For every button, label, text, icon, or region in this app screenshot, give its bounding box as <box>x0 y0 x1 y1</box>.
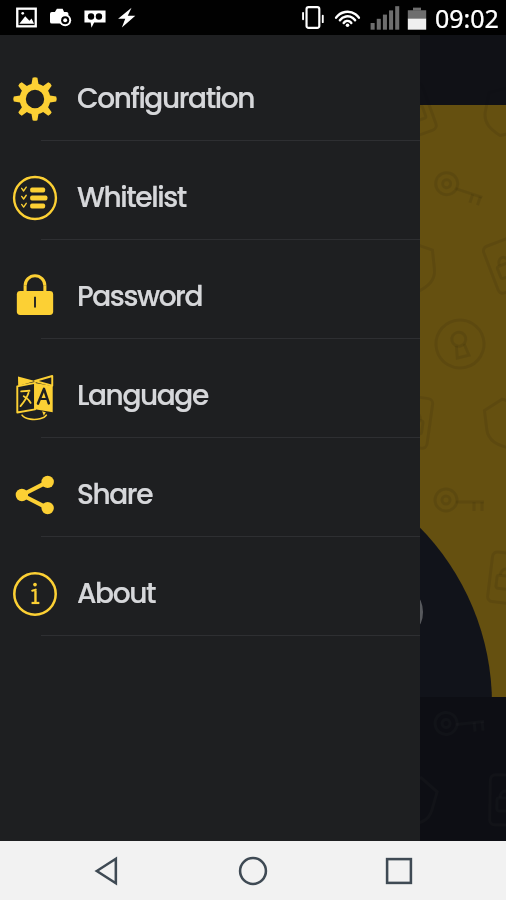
button[interactable]: Password <box>0 240 420 339</box>
staticText: Share <box>77 475 153 514</box>
staticText: Language <box>77 376 208 415</box>
button[interactable]: Language <box>0 339 420 438</box>
staticText: Whitelist <box>77 178 186 217</box>
staticText: Configuration <box>77 79 254 118</box>
staticText: 09:02 <box>435 1 499 35</box>
button[interactable]: About <box>0 537 420 636</box>
button[interactable]: Home <box>214 841 292 900</box>
button[interactable]: Back <box>68 841 146 900</box>
button[interactable]: Configuration <box>0 42 420 141</box>
button[interactable]: Share <box>0 438 420 537</box>
button[interactable]: Whitelist <box>0 141 420 240</box>
staticText: About <box>77 574 155 613</box>
button[interactable]: Recent apps <box>360 841 438 900</box>
staticText: Password <box>77 277 203 316</box>
